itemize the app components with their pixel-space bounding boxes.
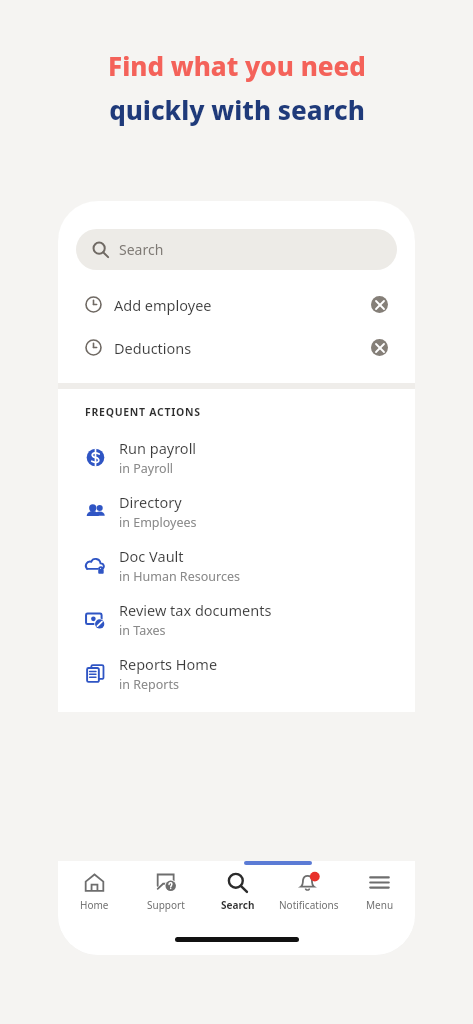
button[interactable]: Run payroll — [58, 430, 415, 484]
staticText: FREQUENT ACTIONS — [85, 405, 201, 419]
staticText: Doc Vault — [119, 546, 184, 566]
staticText: Review tax documents — [119, 600, 272, 620]
staticText: Add employee — [114, 295, 212, 315]
staticText: Support — [147, 898, 185, 912]
button[interactable]: Search — [202, 861, 273, 923]
button[interactable]: Review tax documents — [58, 592, 415, 646]
staticText: in Payroll — [119, 460, 174, 477]
button[interactable]: Support — [130, 861, 202, 923]
staticText: Notifications — [279, 898, 339, 912]
button[interactable]: Home — [58, 861, 130, 923]
staticText: in Taxes — [119, 622, 166, 639]
staticText: Reports Home — [119, 654, 218, 674]
button[interactable]: Remove Deductions — [371, 339, 388, 356]
button[interactable]: Add employee — [58, 283, 415, 326]
staticText: in Human Resources — [119, 568, 240, 585]
staticText: Directory — [119, 492, 182, 512]
staticText: in Employees — [119, 514, 197, 531]
staticText: in Reports — [119, 676, 179, 693]
button[interactable]: Doc Vault — [58, 538, 415, 592]
button[interactable]: Remove Add employee — [371, 296, 388, 313]
button[interactable]: Notifications — [273, 861, 344, 923]
staticText: Menu — [366, 898, 394, 912]
staticText: Search — [221, 898, 255, 912]
staticText: Run payroll — [119, 438, 197, 458]
staticText: Search — [119, 240, 164, 259]
button[interactable]: Search — [76, 229, 397, 270]
staticText: Find what you need — [108, 48, 366, 83]
staticText: quickly with search — [109, 92, 365, 127]
staticText: Deductions — [114, 338, 192, 358]
button[interactable]: Deductions — [58, 326, 415, 369]
button[interactable]: Menu — [344, 861, 415, 923]
button[interactable]: Directory — [58, 484, 415, 538]
staticText: Home — [80, 898, 109, 912]
button[interactable]: Reports Home — [58, 646, 415, 700]
